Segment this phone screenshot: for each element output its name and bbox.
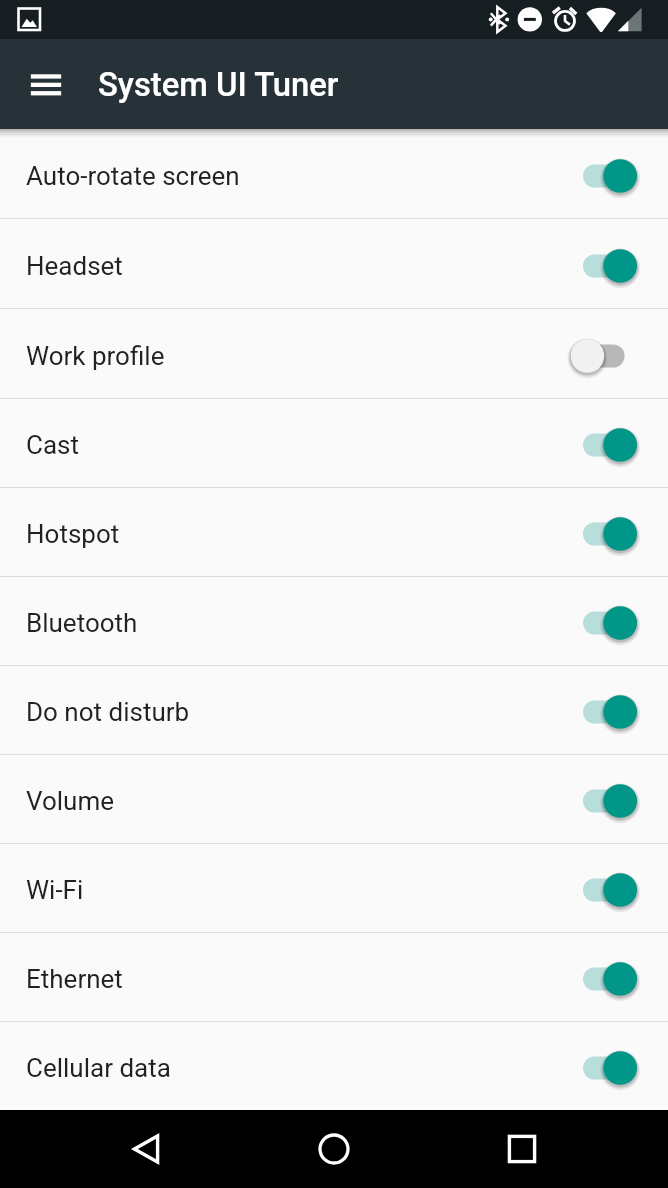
- button[interactable]: Headset: [0, 219, 668, 308]
- staticText: System UI Tuner: [98, 66, 339, 104]
- staticText: Cast: [26, 430, 79, 460]
- button[interactable]: Cellular data: [0, 1022, 668, 1110]
- button[interactable]: Wi-Fi: [0, 844, 668, 932]
- button[interactable]: Do not disturb: [0, 666, 668, 754]
- staticText: Wi-Fi: [26, 875, 84, 905]
- staticText: Hotspot: [26, 519, 120, 549]
- staticText: Work profile: [26, 341, 165, 371]
- button[interactable]: Home: [240, 1118, 428, 1180]
- staticText: Volume: [26, 786, 115, 816]
- button[interactable]: Ethernet: [0, 933, 668, 1021]
- button[interactable]: Back: [52, 1118, 240, 1180]
- button[interactable]: Volume: [0, 755, 668, 843]
- staticText: Do not disturb: [26, 697, 190, 727]
- staticText: Cellular data: [26, 1053, 171, 1083]
- staticText: Ethernet: [26, 964, 123, 994]
- staticText: Auto-rotate screen: [26, 161, 240, 191]
- button[interactable]: Recent apps: [428, 1118, 616, 1180]
- button[interactable]: Auto-rotate screen: [0, 129, 668, 218]
- button[interactable]: Bluetooth: [0, 577, 668, 665]
- staticText: Bluetooth: [26, 608, 138, 638]
- button[interactable]: Open navigation menu: [20, 58, 72, 110]
- staticText: Headset: [26, 251, 123, 281]
- button[interactable]: Cast: [0, 399, 668, 487]
- button[interactable]: Hotspot: [0, 488, 668, 576]
- button[interactable]: Work profile: [0, 309, 668, 398]
